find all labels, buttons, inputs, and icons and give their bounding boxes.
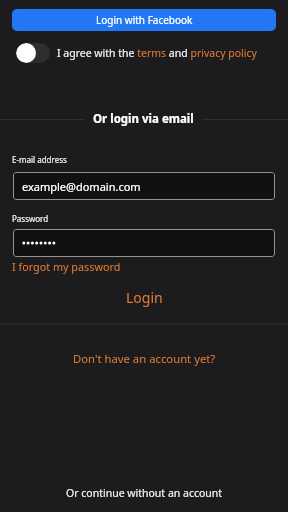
staticText: Login with Facebook [96,13,193,27]
staticText: E-mail address [12,154,67,165]
button[interactable]: I forgot my password [12,259,121,274]
button[interactable]: Login [126,288,163,307]
staticText: Password [12,213,49,224]
staticText: Or login via email [93,111,194,127]
button[interactable]: example@domain.com [13,172,275,200]
staticText: I agree with the terms and privacy polic… [57,46,257,60]
button[interactable]: Don't have an account yet? [73,351,216,366]
button[interactable]: I agree with the terms and privacy polic… [16,43,288,63]
staticText: Or continue without an account [66,486,223,500]
staticText: example@domain.com [22,179,141,194]
button[interactable] [13,229,275,257]
button[interactable]: Or continue without an account [66,486,223,500]
button[interactable]: Login with Facebook [12,9,276,31]
